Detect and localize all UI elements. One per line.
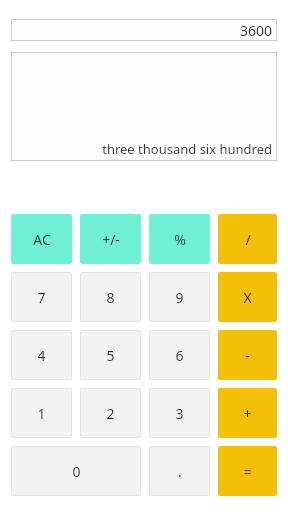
staticText: 5 [106, 346, 115, 365]
button[interactable]: 4 [11, 330, 72, 380]
staticText: . [178, 462, 182, 481]
button[interactable]: - [218, 330, 277, 380]
button[interactable]: . [149, 446, 210, 496]
button[interactable]: 8 [80, 272, 141, 322]
button[interactable]: 1 [11, 388, 72, 438]
staticText: 1 [37, 404, 46, 423]
staticText: = [243, 462, 252, 481]
staticText: AC [33, 230, 51, 249]
button[interactable]: 2 [80, 388, 141, 438]
button[interactable]: 0 [11, 446, 141, 496]
staticText: 8 [106, 288, 115, 307]
staticText: + [243, 404, 252, 423]
button[interactable]: +/- [80, 214, 141, 264]
button[interactable]: three thousand six hundred [11, 52, 277, 161]
staticText: 9 [175, 288, 184, 307]
staticText: % [174, 230, 186, 249]
staticText: 4 [37, 346, 46, 365]
button[interactable]: 3600 [11, 19, 277, 41]
button[interactable]: 7 [11, 272, 72, 322]
staticText: 0 [72, 462, 81, 481]
staticText: +/- [102, 230, 120, 249]
button[interactable]: AC [11, 214, 72, 264]
staticText: three thousand six hundred [102, 140, 272, 158]
staticText: 7 [37, 288, 46, 307]
button[interactable]: 3 [149, 388, 210, 438]
button[interactable]: 9 [149, 272, 210, 322]
staticText: 3600 [239, 21, 272, 40]
staticText: / [245, 230, 251, 249]
button[interactable]: X [218, 272, 277, 322]
button[interactable]: / [218, 214, 277, 264]
staticText: X [243, 288, 252, 307]
button[interactable]: + [218, 388, 277, 438]
button[interactable]: = [218, 446, 277, 496]
staticText: 6 [175, 346, 184, 365]
staticText: 3 [175, 404, 184, 423]
button[interactable]: 5 [80, 330, 141, 380]
staticText: 2 [106, 404, 115, 423]
button[interactable]: % [149, 214, 210, 264]
staticText: - [245, 346, 250, 365]
button[interactable]: 6 [149, 330, 210, 380]
